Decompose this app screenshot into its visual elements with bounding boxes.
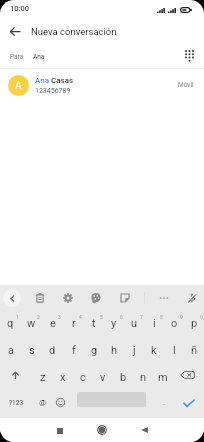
button[interactable]: 2 xyxy=(21,310,42,337)
button[interactable]: Send xyxy=(177,391,204,418)
button[interactable]: 6 xyxy=(104,310,124,337)
button[interactable]: s xyxy=(21,337,42,364)
staticText: i xyxy=(153,317,156,330)
button[interactable]: Themes xyxy=(87,289,105,307)
button[interactable]: Stickers xyxy=(116,289,134,307)
staticText: t xyxy=(92,317,96,330)
staticText: v xyxy=(100,371,106,384)
button[interactable]: c xyxy=(73,364,93,391)
button[interactable]: v xyxy=(93,364,113,391)
staticText: 8 xyxy=(160,314,163,320)
staticText: 123456789 xyxy=(35,87,71,95)
button[interactable]: l xyxy=(164,337,184,364)
staticText: u xyxy=(131,317,138,330)
staticText: f xyxy=(72,344,76,357)
button[interactable]: Clipboard xyxy=(31,289,49,307)
button[interactable]: 1 xyxy=(0,310,21,337)
button[interactable]: Emoji xyxy=(52,391,71,418)
staticText: Para xyxy=(10,53,24,61)
button[interactable]: Expand toolbar xyxy=(3,289,21,307)
button[interactable]: a xyxy=(0,337,21,364)
staticText: ?123 xyxy=(9,399,24,407)
button[interactable]: h xyxy=(104,337,124,364)
button[interactable]: More options xyxy=(155,289,173,307)
staticText: 2 xyxy=(37,314,40,320)
staticText: z xyxy=(40,371,46,384)
staticText: n xyxy=(140,371,147,384)
button[interactable]: f xyxy=(63,337,84,364)
button[interactable]: g xyxy=(84,337,104,364)
button[interactable]: d xyxy=(42,337,63,364)
button[interactable]: Shift xyxy=(0,364,32,391)
staticText: p xyxy=(191,317,198,330)
staticText: A xyxy=(15,80,22,92)
staticText: w xyxy=(27,317,36,330)
staticText: s xyxy=(29,344,35,357)
staticText: c xyxy=(80,371,86,384)
button[interactable]: z xyxy=(32,364,53,391)
staticText: x xyxy=(60,371,66,384)
staticText: 6 xyxy=(120,314,123,320)
staticText: d xyxy=(49,344,56,357)
button[interactable]: Settings xyxy=(59,289,77,307)
staticText: h xyxy=(111,344,118,357)
staticText: m xyxy=(158,371,168,384)
button[interactable]: b xyxy=(113,364,133,391)
button[interactable]: Home xyxy=(85,418,119,442)
button[interactable]: 9 xyxy=(164,310,184,337)
button[interactable]: 4 xyxy=(63,310,84,337)
staticText: Ana xyxy=(35,76,49,85)
button[interactable]: @ xyxy=(33,391,52,418)
staticText: Nueva conversación xyxy=(31,26,117,37)
staticText: 1 xyxy=(16,314,19,320)
button[interactable]: ?123 xyxy=(0,391,33,418)
staticText: Casas xyxy=(49,76,74,85)
staticText: ñ xyxy=(191,344,198,357)
staticText: r xyxy=(72,317,76,330)
staticText: 10:00 xyxy=(10,4,30,13)
button[interactable]: x xyxy=(53,364,73,391)
staticText: e xyxy=(50,317,56,330)
staticText: q xyxy=(7,317,14,330)
button[interactable]: A xyxy=(0,69,204,101)
button[interactable]: 8 xyxy=(144,310,164,337)
button[interactable]: Back xyxy=(127,418,161,442)
button[interactable]: 3 xyxy=(42,310,63,337)
button[interactable]: k xyxy=(144,337,164,364)
staticText: Ana xyxy=(33,53,45,61)
staticText: l xyxy=(173,344,176,357)
button[interactable]: 7 xyxy=(124,310,144,337)
button[interactable]: 0 xyxy=(184,310,204,337)
staticText: 0 xyxy=(200,314,203,320)
staticText: k xyxy=(151,344,157,357)
staticText: j xyxy=(133,344,136,357)
button[interactable]: Back xyxy=(0,16,30,46)
staticText: 3 xyxy=(58,314,61,320)
button[interactable]: n xyxy=(133,364,153,391)
staticText: Móvil xyxy=(178,81,194,89)
staticText: g xyxy=(91,344,98,357)
staticText: . xyxy=(163,398,166,407)
button[interactable]: m xyxy=(153,364,173,391)
staticText: y xyxy=(111,317,117,330)
staticText: 4 xyxy=(79,314,82,320)
button[interactable]: Voice input off xyxy=(183,289,201,307)
button[interactable]: j xyxy=(124,337,144,364)
staticText: o xyxy=(171,317,178,330)
button[interactable]: Dialpad xyxy=(181,48,199,66)
staticText: 9 xyxy=(180,314,183,320)
staticText: 5 xyxy=(100,314,103,320)
staticText: @ xyxy=(39,398,47,407)
staticText: 7 xyxy=(140,314,143,320)
button[interactable]: 5 xyxy=(84,310,104,337)
button[interactable]: Backspace xyxy=(173,364,204,391)
button[interactable]: ñ xyxy=(184,337,204,364)
button[interactable]: Recent apps xyxy=(43,418,77,442)
staticText: b xyxy=(120,371,127,384)
staticText: a xyxy=(8,344,14,357)
